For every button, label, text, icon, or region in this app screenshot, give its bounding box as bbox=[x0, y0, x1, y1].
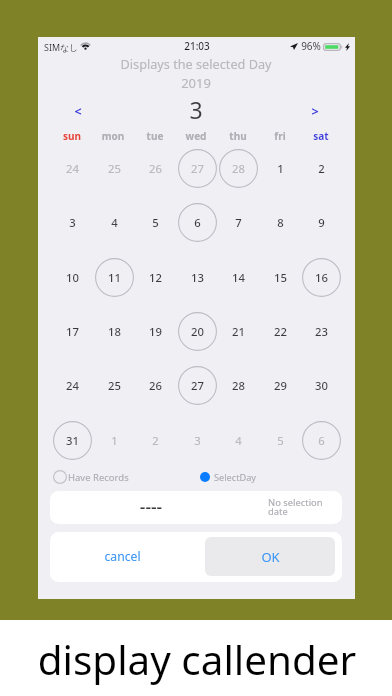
staticText: SIMなし bbox=[44, 41, 79, 53]
staticText: sun bbox=[52, 129, 92, 143]
button[interactable]: 11 bbox=[93, 250, 135, 304]
button[interactable]: Previous month bbox=[64, 97, 92, 125]
button[interactable]: 4 bbox=[217, 413, 259, 467]
staticText: 31 bbox=[66, 433, 79, 448]
staticText: tue bbox=[135, 129, 175, 143]
staticText: Displays the selected Day bbox=[71, 55, 321, 72]
button[interactable]: Have Records bbox=[53, 468, 129, 486]
button[interactable]: 25 bbox=[93, 141, 135, 195]
staticText: 6 bbox=[194, 215, 201, 230]
staticText: SelectDay bbox=[214, 471, 257, 484]
staticText: ---- bbox=[121, 494, 181, 518]
staticText: 29 bbox=[274, 378, 287, 393]
button[interactable]: 17 bbox=[51, 304, 93, 358]
staticText: No selection bbox=[268, 496, 323, 508]
button[interactable]: 8 bbox=[259, 195, 301, 249]
button[interactable]: 29 bbox=[259, 358, 301, 412]
button[interactable]: Next month bbox=[301, 97, 329, 125]
button[interactable]: 1 bbox=[259, 141, 301, 195]
button[interactable]: 27 bbox=[176, 141, 218, 195]
button[interactable]: 5 bbox=[134, 195, 176, 249]
button[interactable]: 1 bbox=[93, 413, 135, 467]
button[interactable]: 3 bbox=[176, 413, 218, 467]
staticText: 4 bbox=[235, 433, 242, 448]
button[interactable]: 28 bbox=[217, 358, 259, 412]
button[interactable]: 21 bbox=[217, 304, 259, 358]
staticText: 24 bbox=[66, 378, 79, 393]
button[interactable]: 30 bbox=[300, 358, 342, 412]
staticText: OK bbox=[261, 548, 280, 566]
button[interactable]: SelectDay bbox=[200, 468, 257, 486]
button[interactable]: 12 bbox=[134, 250, 176, 304]
button[interactable]: 16 bbox=[300, 250, 342, 304]
button[interactable]: 14 bbox=[217, 250, 259, 304]
staticText: fri bbox=[260, 129, 300, 143]
button[interactable]: 24 bbox=[51, 358, 93, 412]
staticText: 3 bbox=[166, 94, 226, 124]
staticText: cancel bbox=[104, 548, 141, 565]
staticText: 2 bbox=[318, 161, 325, 176]
button[interactable]: 20 bbox=[176, 304, 218, 358]
staticText: 15 bbox=[274, 270, 287, 285]
button[interactable]: 7 bbox=[217, 195, 259, 249]
staticText: 8 bbox=[277, 215, 284, 230]
staticText: 17 bbox=[66, 324, 79, 339]
staticText: thu bbox=[218, 129, 258, 143]
staticText: 1 bbox=[111, 433, 118, 448]
button[interactable]: 6 bbox=[176, 195, 218, 249]
staticText: 2 bbox=[152, 433, 159, 448]
button[interactable]: 26 bbox=[134, 358, 176, 412]
staticText: 7 bbox=[235, 215, 242, 230]
staticText: 18 bbox=[108, 324, 121, 339]
staticText: mon bbox=[93, 129, 133, 143]
staticText: < bbox=[74, 103, 82, 120]
button[interactable]: 25 bbox=[93, 358, 135, 412]
staticText: display callender bbox=[1, 632, 392, 687]
staticText: 5 bbox=[277, 433, 284, 448]
button[interactable]: cancel bbox=[55, 537, 190, 576]
button[interactable]: 5 bbox=[259, 413, 301, 467]
staticText: 26 bbox=[149, 378, 162, 393]
staticText: 6 bbox=[318, 433, 325, 448]
staticText: 3 bbox=[69, 215, 76, 230]
button[interactable]: 24 bbox=[51, 141, 93, 195]
staticText: 23 bbox=[315, 324, 328, 339]
staticText: sat bbox=[301, 129, 341, 143]
staticText: Have Records bbox=[68, 471, 129, 484]
staticText: 19 bbox=[149, 324, 162, 339]
button[interactable]: 26 bbox=[134, 141, 176, 195]
staticText: 16 bbox=[315, 270, 328, 285]
button[interactable]: 19 bbox=[134, 304, 176, 358]
staticText: > bbox=[311, 103, 319, 120]
staticText: 28 bbox=[232, 378, 245, 393]
button[interactable]: 18 bbox=[93, 304, 135, 358]
button[interactable]: 2 bbox=[300, 141, 342, 195]
staticText: 9 bbox=[318, 215, 325, 230]
button[interactable]: 22 bbox=[259, 304, 301, 358]
button[interactable]: 10 bbox=[51, 250, 93, 304]
staticText: 2019 bbox=[156, 74, 236, 92]
button[interactable]: 6 bbox=[300, 413, 342, 467]
button[interactable]: 31 bbox=[51, 413, 93, 467]
staticText: 27 bbox=[191, 378, 204, 393]
button[interactable]: OK bbox=[205, 537, 335, 576]
button[interactable]: 3 bbox=[51, 195, 93, 249]
staticText: 21 bbox=[232, 324, 245, 339]
staticText: 24 bbox=[66, 161, 79, 176]
button[interactable]: 28 bbox=[217, 141, 259, 195]
button[interactable]: 15 bbox=[259, 250, 301, 304]
staticText: 10 bbox=[66, 270, 79, 285]
staticText: 22 bbox=[274, 324, 287, 339]
staticText: 14 bbox=[232, 270, 245, 285]
button[interactable]: 9 bbox=[300, 195, 342, 249]
staticText: wed bbox=[176, 129, 216, 143]
button[interactable]: 4 bbox=[93, 195, 135, 249]
staticText: 13 bbox=[191, 270, 204, 285]
button[interactable]: 23 bbox=[300, 304, 342, 358]
staticText: 21:03 bbox=[167, 39, 227, 53]
button[interactable]: 2 bbox=[134, 413, 176, 467]
staticText: 3 bbox=[194, 433, 201, 448]
button[interactable]: 27 bbox=[176, 358, 218, 412]
button[interactable]: 13 bbox=[176, 250, 218, 304]
staticText: 12 bbox=[149, 270, 162, 285]
